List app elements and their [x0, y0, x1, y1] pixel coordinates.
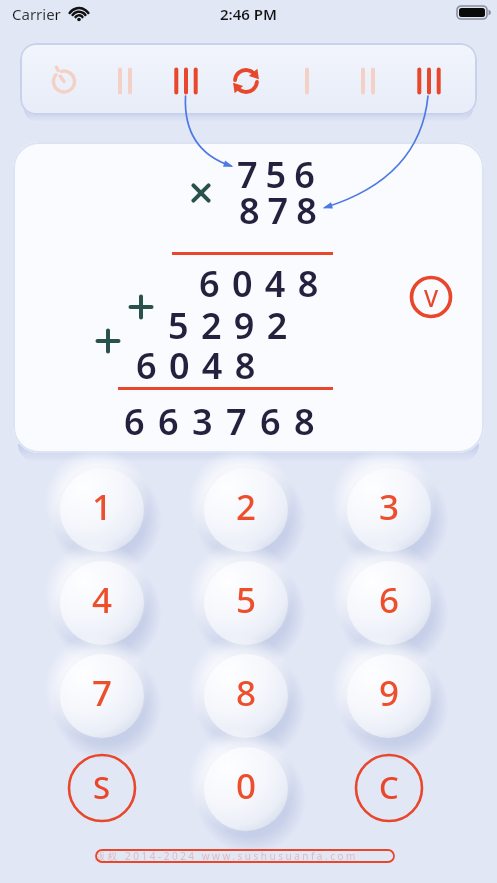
button[interactable]	[156, 46, 216, 116]
staticText: 版权 2014-2024 www.sushusuanfa.com rights	[95, 849, 395, 863]
button[interactable]	[277, 46, 337, 116]
staticText: 756	[237, 150, 323, 199]
staticText: 878	[239, 186, 325, 235]
staticText: C	[379, 766, 399, 808]
staticText: 7	[92, 669, 113, 717]
button[interactable]: 8	[186, 636, 306, 756]
staticText: 6	[379, 576, 400, 624]
staticText: V	[424, 282, 439, 313]
button[interactable]: 9	[329, 636, 449, 756]
staticText: 8	[236, 669, 257, 717]
staticText: 2	[236, 483, 257, 531]
staticText: 5292	[168, 301, 300, 350]
staticText: 6048	[136, 341, 268, 390]
button[interactable]: 4	[42, 543, 162, 663]
staticText: 0	[236, 762, 257, 810]
staticText: 5	[236, 576, 257, 624]
button[interactable]	[338, 46, 398, 116]
staticText: 9	[379, 669, 400, 717]
button[interactable]: 3	[329, 450, 449, 570]
button[interactable]: 2	[186, 450, 306, 570]
staticText: 4	[92, 576, 113, 624]
button[interactable]: 版权 2014-2024 www.sushusuanfa.com rights	[95, 849, 395, 863]
staticText: Carrier	[12, 4, 61, 24]
staticText: 663768	[124, 397, 328, 446]
button[interactable]: 0	[186, 729, 306, 849]
button[interactable]: C	[349, 748, 429, 828]
button[interactable]	[34, 46, 94, 116]
button[interactable]: 5	[186, 543, 306, 663]
button[interactable]	[95, 46, 155, 116]
staticText: 2:46 PM	[220, 4, 277, 24]
button[interactable]: S	[62, 748, 142, 828]
button[interactable]: 1	[42, 450, 162, 570]
staticText: 3	[379, 483, 400, 531]
button[interactable]: 7	[42, 636, 162, 756]
staticText: 1	[92, 483, 113, 531]
button[interactable]: V	[401, 267, 461, 327]
button[interactable]: 6	[329, 543, 449, 663]
staticText: 6048	[199, 259, 331, 308]
staticText: S	[93, 766, 111, 808]
button[interactable]	[216, 46, 276, 116]
button[interactable]	[399, 46, 459, 116]
